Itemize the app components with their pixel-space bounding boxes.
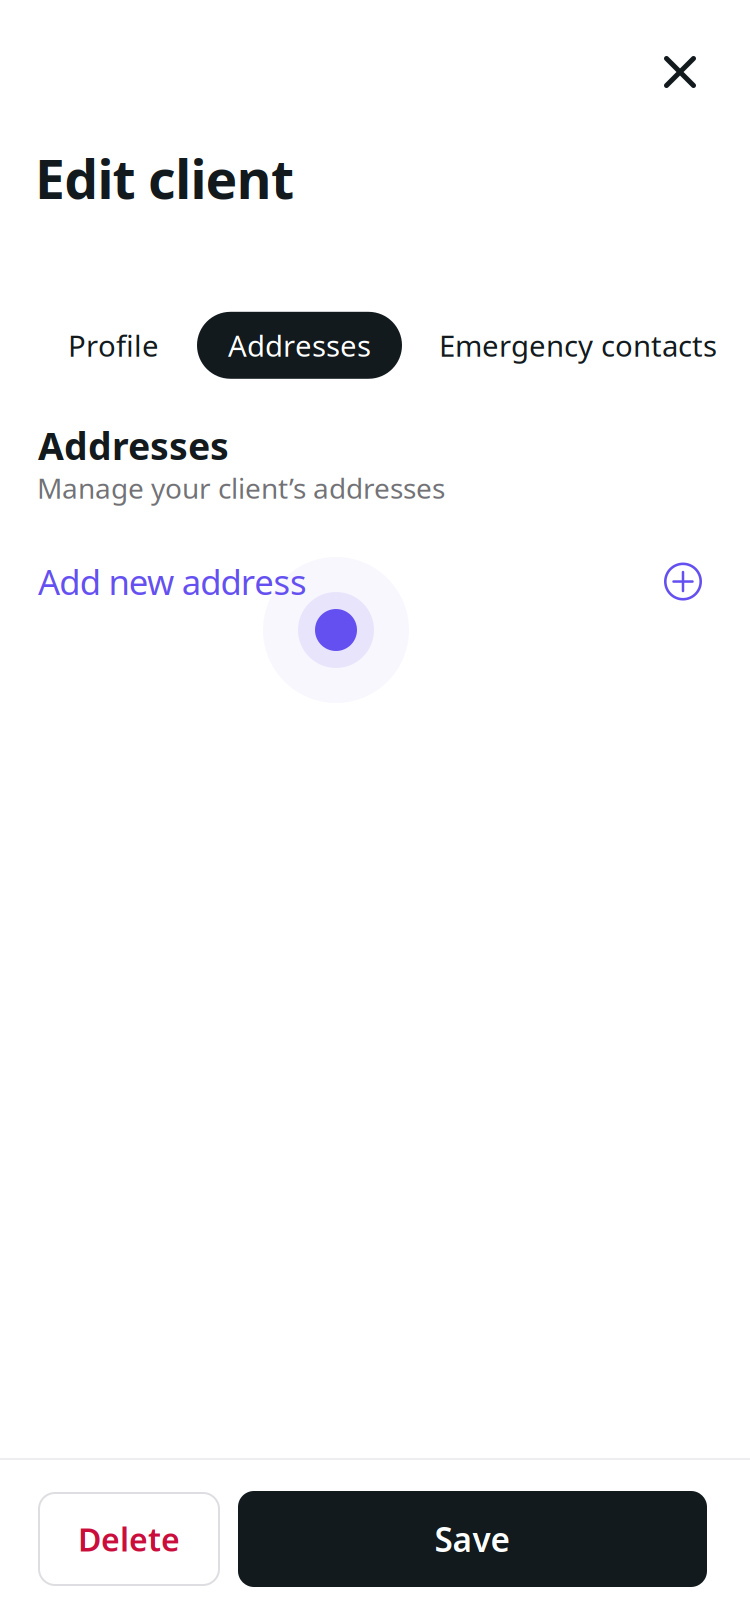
staticText: Delete [78, 1518, 180, 1560]
staticText: Addresses [228, 326, 371, 365]
staticText: Edit client [35, 143, 294, 214]
button[interactable]: Add new address [0, 553, 750, 609]
button[interactable]: Save [238, 1491, 707, 1587]
staticText: Emergency contacts [439, 326, 717, 365]
button[interactable]: Profile [38, 312, 197, 379]
button[interactable]: Emergency contacts [402, 312, 750, 379]
staticText: Manage your client’s addresses [37, 469, 445, 507]
staticText: Addresses [38, 421, 229, 470]
staticText: Save [434, 1517, 510, 1561]
button[interactable]: Delete [39, 1493, 219, 1585]
button[interactable]: Close [651, 43, 709, 101]
staticText: Profile [68, 326, 159, 365]
staticText: Add new address [38, 558, 307, 604]
button[interactable]: Addresses [197, 312, 402, 379]
